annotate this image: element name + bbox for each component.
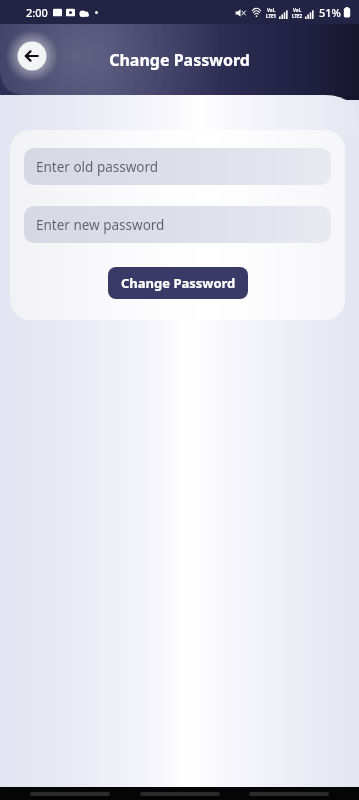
button[interactable]: Back	[14, 38, 50, 74]
staticText: 51%	[319, 5, 341, 20]
staticText: VoL	[293, 7, 302, 13]
button[interactable]	[249, 792, 329, 796]
staticText: Change Password	[109, 49, 250, 71]
staticText: Enter new password	[36, 216, 165, 234]
staticText: LTE2	[292, 13, 303, 19]
staticText: Change Password	[121, 274, 236, 292]
staticText: VoL	[267, 7, 276, 13]
button[interactable]: Enter new password	[24, 206, 331, 243]
button[interactable]: Enter old password	[24, 148, 331, 185]
staticText: 2:00	[26, 5, 48, 20]
staticText: Enter old password	[36, 158, 159, 176]
button[interactable]	[30, 792, 110, 796]
button[interactable]	[140, 792, 220, 796]
staticText: LTE1	[266, 13, 277, 19]
button[interactable]: Change Password	[108, 267, 248, 299]
